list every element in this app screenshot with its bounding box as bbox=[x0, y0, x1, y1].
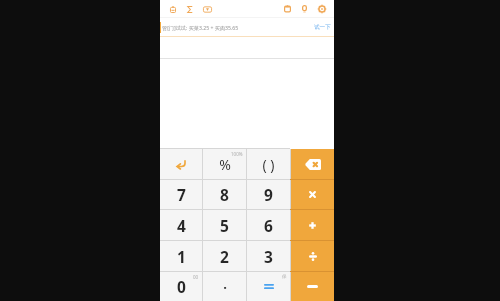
button[interactable]: 管[门]试试: 买菜3.25 + 买肉35.65 bbox=[160, 18, 334, 37]
button[interactable]: 1 bbox=[160, 241, 202, 271]
staticText: 3 bbox=[264, 246, 273, 267]
button[interactable]: History bbox=[280, 2, 294, 16]
button[interactable]: Voice input bbox=[297, 2, 311, 16]
staticText: 试一下 bbox=[314, 24, 331, 31]
staticText: 5 bbox=[220, 215, 229, 236]
button[interactable]: 8 bbox=[203, 180, 246, 209]
button[interactable]: Sum bbox=[183, 2, 197, 16]
button[interactable]: 0 bbox=[160, 272, 202, 301]
button[interactable]: Delete bbox=[291, 149, 334, 179]
button[interactable]: Subtract bbox=[291, 272, 334, 301]
button[interactable]: ( ) bbox=[247, 149, 290, 179]
staticText: 6 bbox=[264, 215, 273, 236]
staticText: 0 bbox=[177, 276, 186, 297]
staticText: 2 bbox=[220, 246, 229, 267]
button[interactable]: Equals bbox=[247, 272, 290, 301]
button[interactable]: Add bbox=[291, 210, 334, 240]
button[interactable]: 9 bbox=[247, 180, 290, 209]
button[interactable]: % bbox=[203, 149, 246, 179]
staticText: % bbox=[219, 155, 231, 174]
button[interactable]: Undo bbox=[160, 149, 202, 179]
staticText: 100% bbox=[231, 151, 243, 157]
button[interactable]: · bbox=[203, 272, 246, 301]
button[interactable]: 3 bbox=[247, 241, 290, 271]
button[interactable]: 4 bbox=[160, 210, 202, 240]
staticText: 保 bbox=[282, 274, 287, 280]
button[interactable]: 6 bbox=[247, 210, 290, 240]
button[interactable]: Divide bbox=[291, 241, 334, 271]
button[interactable]: 5 bbox=[203, 210, 246, 240]
staticText: ( ) bbox=[262, 155, 275, 174]
staticText: · bbox=[223, 278, 227, 296]
staticText: 4 bbox=[177, 215, 186, 236]
staticText: 9 bbox=[264, 184, 273, 205]
staticText: 00 bbox=[193, 274, 199, 280]
staticText: 8 bbox=[220, 184, 229, 205]
staticText: 管[门]试试: 买菜3.25 + 买肉35.65 bbox=[162, 24, 239, 31]
staticText: 7 bbox=[177, 184, 186, 205]
button[interactable]: Unit conversion bbox=[200, 2, 214, 16]
button[interactable]: 7 bbox=[160, 180, 202, 209]
button[interactable]: 2 bbox=[203, 241, 246, 271]
button[interactable]: Settings bbox=[315, 2, 329, 16]
button[interactable]: Multiply bbox=[291, 180, 334, 209]
staticText: 1 bbox=[177, 246, 186, 267]
button[interactable]: Calculator mode bbox=[166, 2, 180, 16]
